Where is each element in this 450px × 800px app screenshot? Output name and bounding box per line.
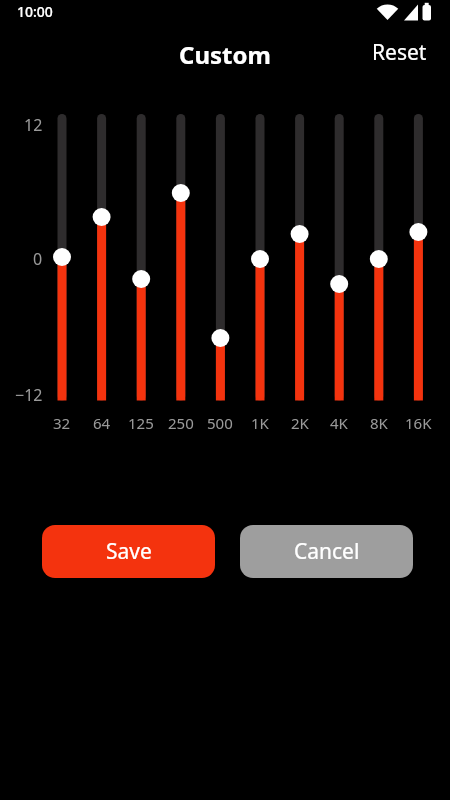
button[interactable] <box>87 110 117 405</box>
button[interactable] <box>285 110 315 405</box>
button[interactable] <box>324 110 354 405</box>
button[interactable] <box>47 110 77 405</box>
button[interactable] <box>364 110 394 405</box>
staticText: Cancel <box>294 537 360 566</box>
staticText: 1K <box>251 413 269 433</box>
staticText: 32 <box>53 413 71 433</box>
staticText: 64 <box>93 413 111 433</box>
staticText: Custom <box>179 38 271 71</box>
staticText: 2K <box>291 413 309 433</box>
button[interactable] <box>205 110 235 405</box>
button[interactable] <box>166 110 196 405</box>
staticText: Save <box>106 537 152 566</box>
staticText: 500 <box>207 413 233 433</box>
button[interactable]: Save <box>42 525 215 578</box>
staticText: 12 <box>24 114 43 134</box>
button[interactable] <box>403 110 433 405</box>
staticText: 16K <box>405 413 432 433</box>
staticText: 4K <box>330 413 348 433</box>
staticText: 0 <box>33 248 43 268</box>
button[interactable] <box>126 110 156 405</box>
staticText: 10:00 <box>17 2 53 21</box>
staticText: 125 <box>128 413 154 433</box>
staticText: −12 <box>15 384 43 404</box>
staticText: 8K <box>370 413 388 433</box>
button[interactable]: Cancel <box>240 525 413 578</box>
staticText: 250 <box>168 413 194 433</box>
staticText: Reset <box>372 38 427 67</box>
button[interactable] <box>245 110 275 405</box>
button[interactable]: Reset <box>358 32 440 72</box>
